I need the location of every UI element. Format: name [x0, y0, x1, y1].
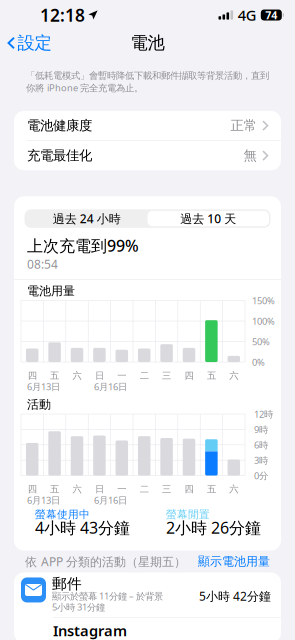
- staticText: 6月16日: [94, 380, 127, 393]
- button[interactable]: 過去 10 天: [147, 211, 269, 226]
- staticText: 顯示於螢幕 11分鐘 – 於背景: [52, 590, 163, 602]
- staticText: 二: [140, 483, 149, 495]
- button[interactable]: 電池健康度: [14, 111, 281, 140]
- staticText: 六: [229, 370, 238, 381]
- staticText: 「低耗電模式」會暫時降低下載和郵件擷取等背景活動，直到你將 iPhone 完全充…: [26, 70, 269, 94]
- staticText: 9時: [254, 423, 268, 436]
- staticText: 郵件: [52, 575, 82, 593]
- staticText: 150%: [252, 294, 275, 307]
- staticText: 六: [229, 483, 238, 495]
- staticText: Instagram: [53, 621, 127, 640]
- staticText: 100%: [252, 315, 275, 327]
- staticText: 五: [207, 370, 216, 381]
- staticText: 六: [72, 370, 81, 381]
- staticText: 電池用量: [27, 284, 75, 298]
- staticText: 5小時 31分鐘: [52, 601, 105, 613]
- button[interactable]: 顯示電池用量: [198, 554, 270, 569]
- staticText: 0%: [252, 356, 265, 368]
- staticText: 6月16日: [94, 494, 127, 506]
- button[interactable]: 充電最佳化: [14, 141, 281, 170]
- staticText: 日: [95, 483, 104, 495]
- staticText: 12時: [254, 408, 273, 420]
- button[interactable]: 設定: [0, 28, 51, 58]
- staticText: 08:54: [27, 256, 58, 272]
- staticText: 五: [50, 483, 59, 495]
- staticText: 日: [95, 370, 104, 381]
- staticText: 設定: [17, 32, 51, 54]
- staticText: 過去 10 天: [180, 211, 236, 226]
- staticText: 上次充電到99%: [27, 235, 139, 256]
- staticText: 四: [28, 483, 37, 495]
- staticText: 三: [162, 483, 171, 495]
- staticText: 電池健康度: [27, 117, 92, 134]
- staticText: 一: [117, 483, 126, 495]
- staticText: 4小時 43分鐘: [35, 517, 130, 538]
- staticText: 五: [207, 483, 216, 495]
- staticText: 74: [265, 8, 277, 22]
- staticText: 四: [28, 370, 37, 381]
- staticText: 12:18: [40, 3, 85, 26]
- staticText: 三: [162, 370, 171, 381]
- staticText: 充電最佳化: [27, 147, 92, 164]
- staticText: 6時: [254, 439, 268, 451]
- staticText: 二: [140, 370, 149, 381]
- staticText: 6月13日: [27, 494, 60, 506]
- staticText: 無: [243, 147, 256, 164]
- staticText: 6月13日: [27, 380, 60, 393]
- staticText: 過去 24 小時: [53, 211, 121, 226]
- staticText: 螢幕閒置: [166, 508, 210, 521]
- staticText: 螢幕使用中: [35, 508, 90, 521]
- staticText: 活動: [27, 397, 51, 412]
- staticText: 50%: [252, 335, 270, 348]
- staticText: 一: [117, 370, 126, 381]
- staticText: 4G: [238, 5, 257, 25]
- staticText: 3時: [254, 454, 268, 466]
- staticText: 電池: [130, 32, 164, 54]
- staticText: 六: [72, 483, 81, 495]
- staticText: 顯示電池用量: [198, 554, 270, 569]
- staticText: 依 APP 分類的活動（星期五）: [25, 553, 186, 569]
- staticText: 2小時 26分鐘: [166, 517, 261, 538]
- button[interactable]: 過去 24 小時: [26, 211, 147, 226]
- staticText: 正常: [230, 117, 256, 134]
- staticText: 四: [184, 483, 193, 495]
- staticText: 四: [184, 370, 193, 381]
- staticText: 五: [50, 370, 59, 381]
- staticText: 0分: [254, 469, 268, 482]
- staticText: 5小時 42分鐘: [199, 588, 271, 604]
